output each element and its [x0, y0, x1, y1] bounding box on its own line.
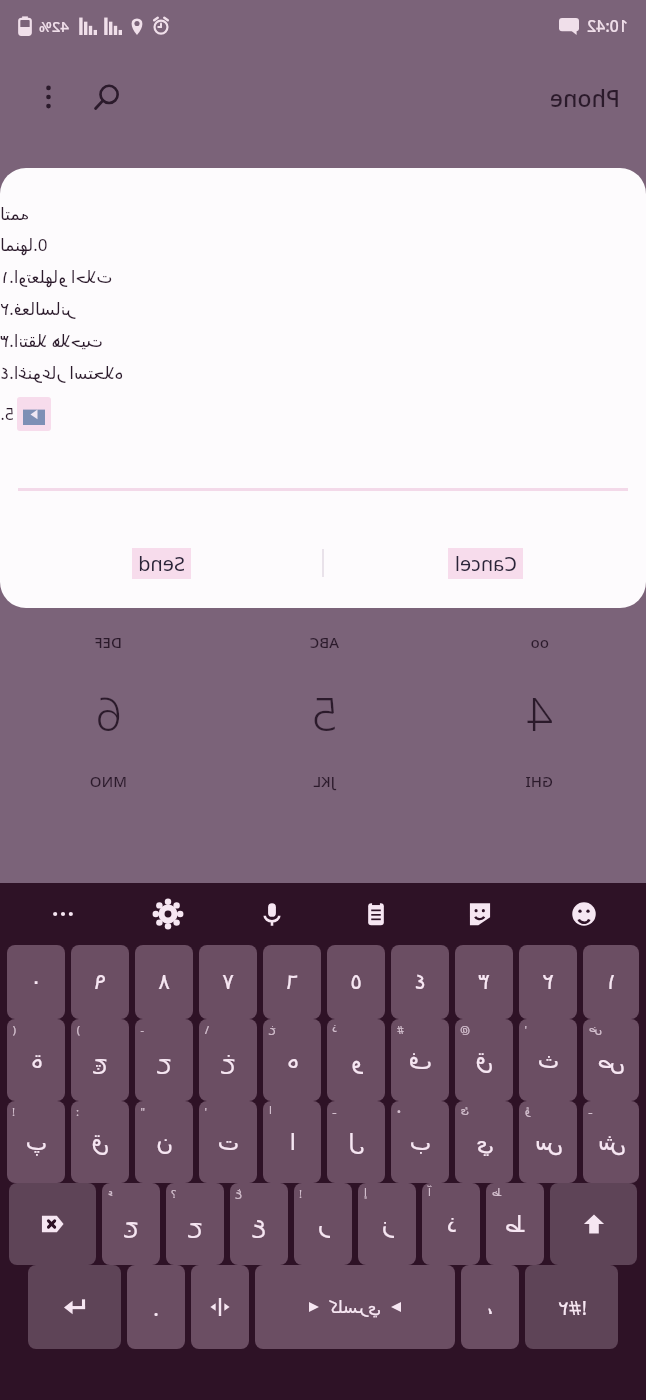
button[interactable]: Cancel: [324, 535, 646, 591]
staticText: كلسري: [329, 1297, 381, 1317]
button[interactable]: More: [10, 883, 115, 945]
button[interactable]: Send: [0, 535, 322, 591]
staticText: ﺉ: [460, 1104, 469, 1117]
button[interactable]: ': [519, 1019, 577, 1101]
staticText: ـ: [588, 1104, 592, 1117]
button[interactable]: ١: [583, 945, 639, 1019]
button[interactable]: ABC: [216, 614, 431, 809]
staticText: Send: [138, 550, 185, 577]
button[interactable]: #: [391, 1019, 449, 1101]
button[interactable]: ٧: [199, 945, 257, 1019]
button[interactable]: Stickers: [428, 883, 532, 945]
button[interactable]: ﺅ: [519, 1101, 577, 1183]
staticText: ': [204, 1104, 207, 1119]
staticText: ت: [217, 1129, 239, 1156]
button[interactable]: .: [127, 1265, 185, 1349]
staticText: ظ: [491, 1186, 502, 1199]
button[interactable]: !: [294, 1183, 352, 1265]
button[interactable]: ٢: [519, 945, 577, 1019]
button[interactable]: Search: [84, 74, 130, 120]
button[interactable]: ﺫ: [327, 1019, 385, 1101]
button[interactable]: Move cursor: [191, 1265, 249, 1349]
staticText: #: [396, 1022, 404, 1037]
staticText: ن: [156, 1129, 173, 1156]
staticText: .: [153, 1292, 159, 1322]
staticText: 5: [311, 682, 338, 745]
staticText: ،: [486, 1294, 494, 1320]
button[interactable]: ﺀ: [102, 1183, 160, 1265]
staticText: Cancel: [454, 550, 517, 577]
staticText: ﺁ: [427, 1186, 431, 1199]
button[interactable]: Settings: [115, 883, 220, 945]
staticText: ص: [597, 1047, 625, 1074]
staticText: ٤: [414, 969, 426, 995]
button[interactable]: ﺉ: [455, 1101, 513, 1183]
staticText: ب: [409, 1129, 431, 1156]
button[interactable]: Emoji: [532, 883, 636, 945]
staticText: !: [299, 1186, 302, 1201]
button[interactable]: •: [391, 1101, 449, 1183]
staticText: پ: [25, 1129, 47, 1156]
staticText: 5.: [0, 403, 14, 425]
button[interactable]: ـ: [583, 1101, 639, 1183]
button[interactable]: ٥: [327, 945, 385, 1019]
staticText: ٨: [158, 969, 170, 995]
staticText: ل: [348, 1129, 365, 1156]
button[interactable]: ': [199, 1101, 257, 1183]
button[interactable]: ﺍ: [263, 1101, 321, 1183]
button[interactable]: Shift: [550, 1183, 637, 1265]
button[interactable]: Clipboard: [324, 883, 428, 945]
staticText: MNO: [89, 771, 127, 791]
button[interactable]: Message input: [18, 457, 628, 491]
button[interactable]: oo: [431, 614, 646, 809]
button[interactable]: !#٢: [525, 1265, 618, 1349]
button[interactable]: ظ: [486, 1183, 544, 1265]
staticText: ﺅ: [524, 1104, 530, 1117]
staticText: ذ: [446, 1211, 457, 1238]
button[interactable]: ﺁ: [422, 1183, 480, 1265]
button[interactable]: ،: [461, 1265, 519, 1349]
button[interactable]: ٩: [71, 945, 129, 1019]
button[interactable]: @: [455, 1019, 513, 1101]
staticText: ٢: [542, 969, 554, 995]
button[interactable]: ﺽ: [583, 1019, 639, 1101]
button[interactable]: ): [71, 1019, 129, 1101]
button[interactable]: Space: [255, 1265, 455, 1349]
button[interactable]: (: [7, 1019, 65, 1101]
button[interactable]: -: [135, 1019, 193, 1101]
button[interactable]: ٨: [135, 945, 193, 1019]
button[interactable]: Voice input: [220, 883, 324, 945]
button[interactable]: DEF: [0, 614, 216, 809]
staticText: 4: [526, 682, 553, 745]
staticText: Phone: [549, 82, 620, 113]
button[interactable]: \: [199, 1019, 257, 1101]
staticText: 6: [95, 682, 122, 745]
staticText: ق: [475, 1047, 493, 1074]
button[interactable]: ٦: [263, 945, 321, 1019]
staticText: ز: [381, 1211, 393, 1238]
button[interactable]: ـ: [327, 1101, 385, 1183]
button[interactable]: ٣: [455, 945, 513, 1019]
button[interactable]: :: [71, 1101, 129, 1183]
button[interactable]: ﺇ: [358, 1183, 416, 1265]
staticText: 0.لمنها: [0, 233, 48, 256]
staticText: JKL: [313, 771, 335, 791]
button[interactable]: More options: [26, 75, 70, 119]
staticText: ﺫ: [332, 1022, 337, 1035]
button[interactable]: Backspace: [9, 1183, 96, 1265]
button[interactable]: Enter: [28, 1265, 121, 1349]
button[interactable]: ?: [166, 1183, 224, 1265]
staticText: (: [12, 1022, 16, 1037]
button[interactable]: ﻍ: [230, 1183, 288, 1265]
button[interactable]: ٠: [7, 945, 65, 1019]
staticText: ط: [504, 1211, 526, 1238]
staticText: ا: [289, 1129, 296, 1156]
button[interactable]: !: [7, 1101, 65, 1183]
button[interactable]: ٤: [391, 945, 449, 1019]
staticText: ': [524, 1022, 527, 1037]
staticText: خ: [221, 1047, 236, 1074]
staticText: ٧: [222, 969, 234, 995]
staticText: ٢.فعالسانر: [0, 297, 75, 320]
button[interactable]: ": [135, 1101, 193, 1183]
button[interactable]: ﺥ: [263, 1019, 321, 1101]
